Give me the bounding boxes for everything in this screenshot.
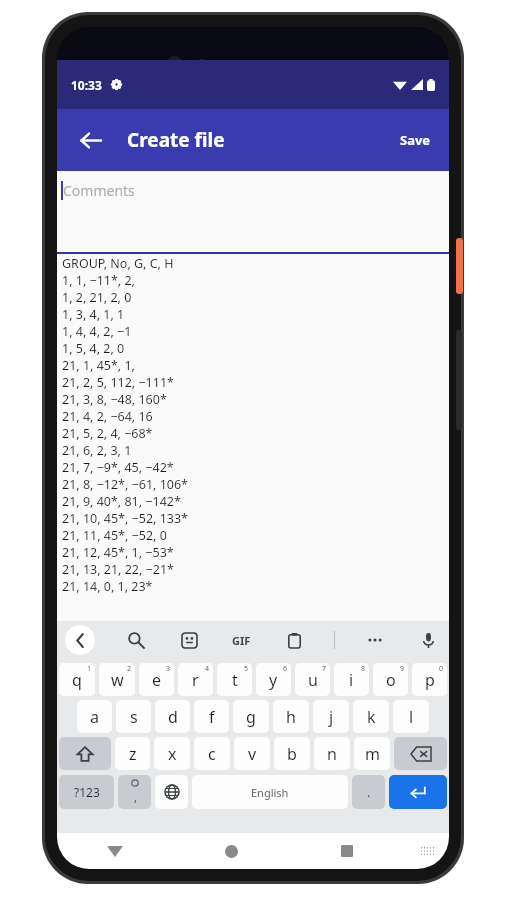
button[interactable]: v [234, 737, 270, 770]
button[interactable]: a [77, 700, 112, 733]
button[interactable]: English [192, 775, 348, 809]
staticText: 1, 5, 4, 2, 0 [62, 340, 125, 357]
staticText: q [72, 669, 82, 691]
staticText: 7 [322, 664, 327, 674]
staticText: 21, 7, −9*, 45, −42* [62, 459, 174, 476]
button[interactable]: Back [67, 117, 113, 163]
staticText: a [90, 706, 99, 728]
staticText: z [129, 743, 137, 765]
button[interactable]: Save [386, 121, 445, 159]
staticText: b [287, 743, 297, 765]
staticText: 1 [87, 664, 92, 674]
staticText: f [209, 706, 215, 728]
staticText: w [111, 669, 124, 691]
button[interactable]: d [155, 700, 190, 733]
button[interactable]: h [273, 700, 309, 733]
staticText: 21, 1, 45*, 1, [62, 357, 135, 374]
button[interactable]: Back [57, 833, 173, 869]
staticText: r [192, 669, 199, 691]
button[interactable]: GIF [229, 630, 254, 651]
staticText: n [327, 743, 337, 765]
staticText: Save [400, 131, 431, 149]
staticText: g [246, 706, 256, 728]
staticText: 8 [361, 664, 366, 674]
button[interactable]: Emoji [176, 627, 202, 653]
staticText: s [130, 706, 138, 728]
button[interactable]: k [353, 700, 389, 733]
staticText: k [367, 706, 376, 728]
staticText: 21, 5, 2, 4, −68* [62, 425, 153, 442]
button[interactable]: . [352, 775, 385, 809]
button[interactable]: t [217, 663, 252, 696]
staticText: o [386, 669, 396, 691]
button[interactable]: More options [362, 627, 388, 653]
staticText: c [208, 743, 216, 765]
staticText: 1, 2, 21, 2, 0 [62, 289, 132, 306]
staticText: j [329, 706, 334, 728]
button[interactable]: b [274, 737, 310, 770]
staticText: p [425, 669, 435, 691]
button[interactable]: g [233, 700, 269, 733]
button[interactable]: Recent apps [289, 833, 405, 869]
staticText: e [152, 669, 162, 691]
button[interactable]: f [194, 700, 229, 733]
button[interactable]: p [412, 663, 447, 696]
button[interactable]: m [354, 737, 390, 770]
button[interactable]: q [59, 663, 95, 696]
button[interactable]: Home [173, 833, 289, 869]
button[interactable]: ?123 [59, 775, 114, 809]
staticText: 21, 10, 45*, −52, 133* [62, 510, 188, 527]
button[interactable]: o [373, 663, 408, 696]
staticText: 0 [439, 664, 444, 674]
staticText: 21, 9, 40*, 81, −142* [62, 493, 181, 510]
staticText: 21, 8, −12*, −61, 106* [62, 476, 188, 493]
button[interactable]: l [393, 700, 429, 733]
staticText: ?123 [74, 784, 100, 800]
button[interactable]: j [313, 700, 349, 733]
staticText: 4 [205, 664, 210, 674]
staticText: i [349, 669, 354, 691]
button[interactable]: x [154, 737, 190, 770]
staticText: Create file [127, 127, 225, 153]
button[interactable]: Shift [59, 737, 111, 770]
button[interactable]: y [256, 663, 291, 696]
staticText: 21, 2, 5, 112, −111* [62, 374, 174, 391]
button[interactable]: GROUP, No, G, C, H [57, 254, 449, 621]
button[interactable]: z [115, 737, 150, 770]
button[interactable]: Clipboard [281, 627, 307, 653]
button[interactable]: n [314, 737, 350, 770]
button[interactable]: i [334, 663, 369, 696]
staticText: u [308, 669, 318, 691]
staticText: 1, 1, −11*, 2, [62, 272, 135, 289]
staticText: 1, 4, 4, 2, −1 [62, 323, 132, 340]
button[interactable]: Comments [57, 171, 449, 254]
button[interactable]: w [99, 663, 135, 696]
staticText: d [168, 706, 178, 728]
button[interactable]: Voice input [415, 627, 441, 653]
staticText: x [168, 743, 177, 765]
button[interactable]: e [139, 663, 174, 696]
staticText: t [232, 669, 238, 691]
button[interactable]: u [295, 663, 330, 696]
staticText: v [248, 743, 257, 765]
staticText: 21, 14, 0, 1, 23* [62, 578, 153, 595]
button[interactable]: Switch keyboard [405, 833, 449, 869]
staticText: GIF [232, 633, 251, 648]
staticText: h [286, 706, 296, 728]
button[interactable]: Enter [389, 775, 447, 809]
button[interactable]: Change language [155, 775, 188, 809]
staticText: 21, 13, 21, 22, −21* [62, 561, 174, 578]
button[interactable]: Backspace [394, 737, 447, 770]
button[interactable]: s [116, 700, 151, 733]
staticText: 21, 11, 45*, −52, 0 [62, 527, 167, 544]
button[interactable]: Search [123, 627, 149, 653]
staticText: y [269, 669, 278, 691]
staticText: l [409, 706, 414, 728]
button[interactable]: r [178, 663, 213, 696]
staticText: English [251, 785, 289, 800]
staticText: 5 [244, 664, 249, 674]
button[interactable]: Expand [65, 625, 95, 655]
button[interactable]: Emoji and comma [118, 775, 151, 809]
button[interactable]: c [194, 737, 230, 770]
staticText: 1, 3, 4, 1, 1 [62, 306, 125, 323]
